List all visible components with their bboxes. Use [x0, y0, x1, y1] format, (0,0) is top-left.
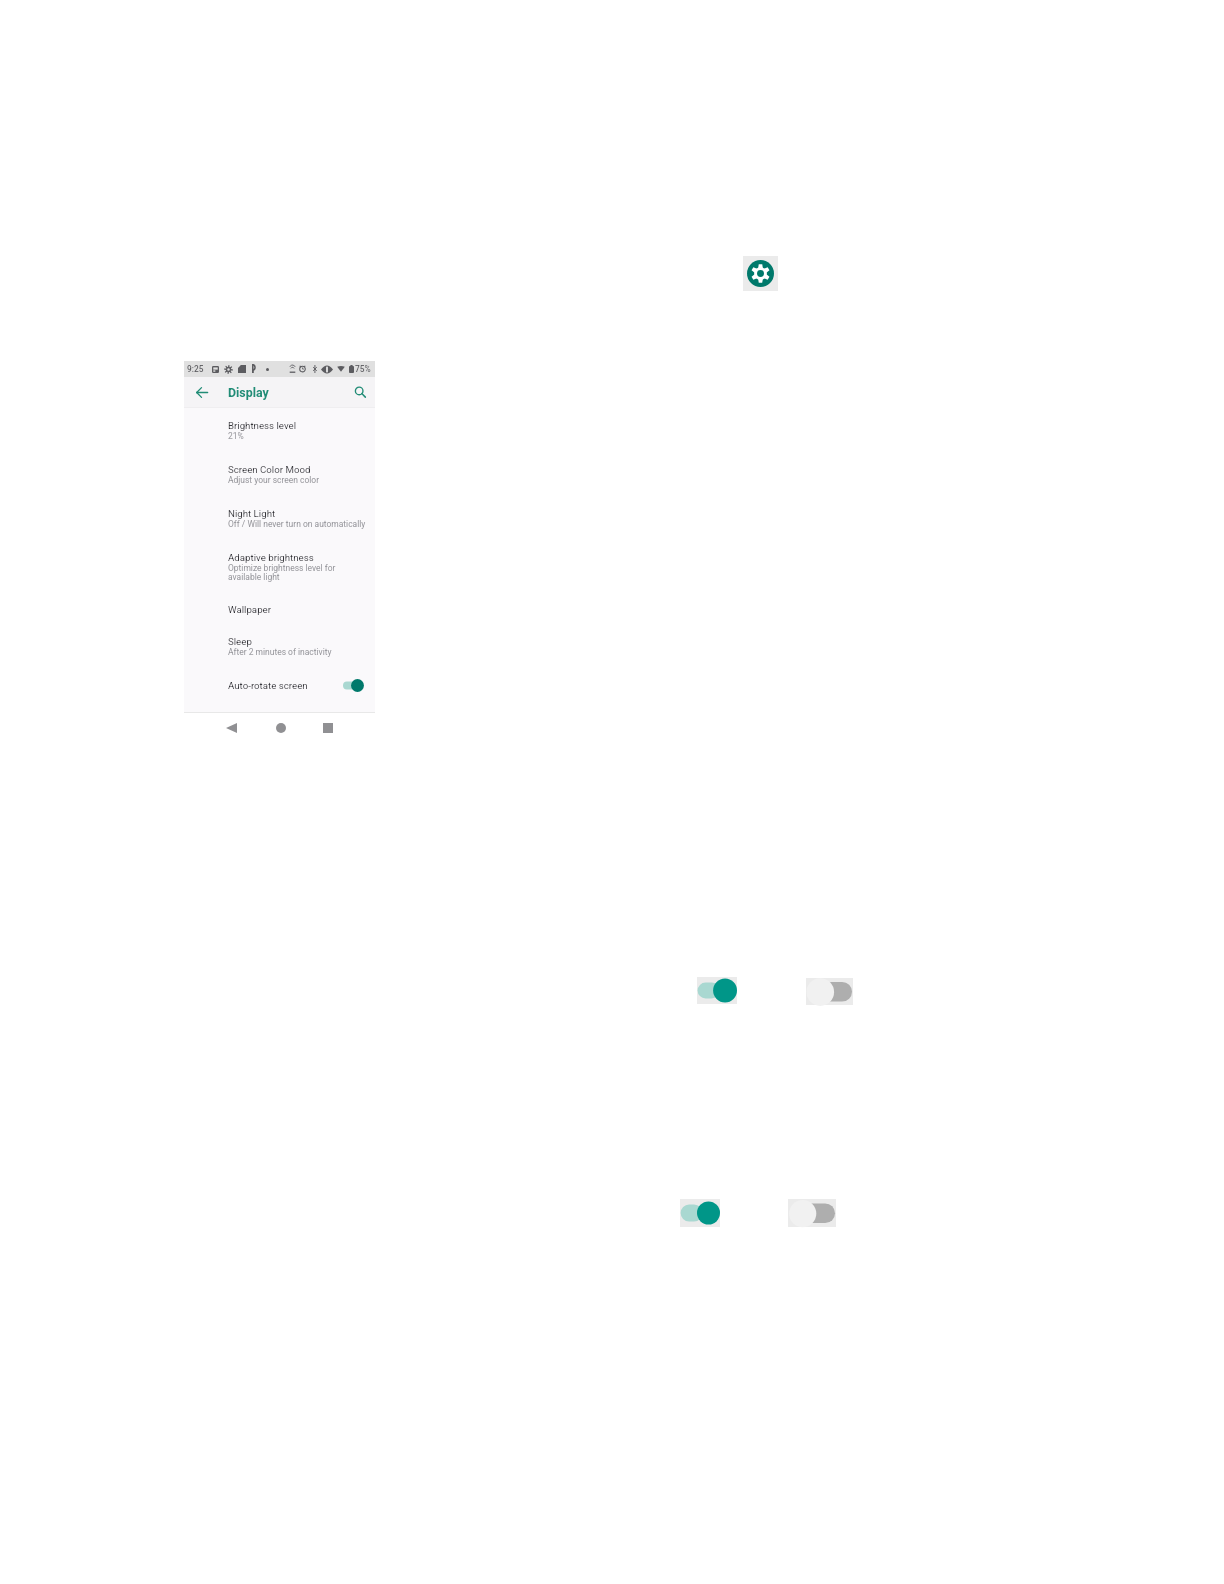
staticText: Optimize brightness level for available …: [228, 563, 336, 582]
button[interactable]: Night Light: [184, 496, 375, 540]
button[interactable]: Recents: [316, 717, 340, 739]
button[interactable]: Adaptive brightness: [184, 540, 375, 593]
staticText: 21%: [228, 431, 244, 441]
button[interactable]: Navigate up: [190, 380, 214, 404]
staticText: 9:25: [187, 364, 204, 374]
button[interactable]: Toggle off: [788, 1199, 836, 1227]
staticText: After 2 minutes of inactivity: [228, 647, 332, 657]
button[interactable]: Search: [348, 380, 372, 404]
staticText: 75%: [355, 364, 371, 374]
button[interactable]: Settings: [743, 256, 778, 291]
button[interactable]: Back: [219, 717, 243, 739]
staticText: Night Light: [228, 508, 276, 519]
button[interactable]: Toggle on: [697, 977, 737, 1004]
staticText: Sleep: [228, 636, 252, 647]
button[interactable]: Auto-rotate screen: [184, 667, 375, 704]
button[interactable]: Brightness level: [184, 408, 375, 452]
staticText: Screen Color Mood: [228, 464, 311, 475]
staticText: Adjust your screen color: [228, 475, 320, 485]
button[interactable]: Auto-rotate screen toggle: [343, 679, 364, 692]
staticText: Off / Will never turn on automatically: [228, 519, 366, 529]
button[interactable]: Toggle on: [680, 1199, 720, 1227]
staticText: Adaptive brightness: [228, 552, 314, 563]
button[interactable]: Toggle off: [806, 978, 853, 1005]
button[interactable]: Home: [269, 717, 293, 739]
button[interactable]: Wallpaper: [184, 593, 375, 626]
button[interactable]: Screen Color Mood: [184, 452, 375, 496]
staticText: Brightness level: [228, 420, 297, 431]
staticText: Wallpaper: [228, 604, 271, 615]
staticText: Display: [228, 385, 269, 400]
staticText: Auto-rotate screen: [228, 680, 308, 691]
button[interactable]: Sleep: [184, 626, 375, 667]
